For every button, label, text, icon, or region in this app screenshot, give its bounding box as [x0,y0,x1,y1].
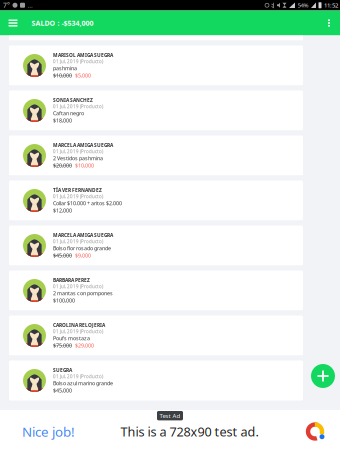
staticText: 01 Jul, 2019 (Producto) [53,238,103,244]
staticText: MARCELA AMIGA SUEGRA [53,142,113,148]
button[interactable]: Nice job! [0,410,340,453]
staticText: $45,000 [53,387,72,394]
button[interactable]: MARISOL AMIGA SUEGRA [9,45,303,85]
staticText: … [27,1,32,10]
staticText: CAROLINA RELOJERIA [53,322,105,328]
staticText: $10,000 [75,162,94,169]
staticText: $75.000 [53,342,72,349]
staticText: 01 Jul, 2019 (Producto) [53,148,103,154]
staticText: SALDO : -$534,000 [31,18,93,28]
staticText: 01 Jul, 2019 (Producto) [53,328,103,334]
staticText: Bolso azul marino grande [53,379,113,387]
staticText: 01 Jul, 2019 (Producto) [53,58,103,64]
staticText: pashmina [53,64,77,72]
staticText: 11:52 [324,1,338,9]
staticText: 01 Jul, 2019 (Producto) [53,193,103,199]
staticText: 01 Jul, 2019 (Producto) [53,283,103,289]
button[interactable]: TÍA VER FERNANDEZ [9,180,303,220]
staticText: Bolso flor rosado grande [53,244,111,252]
button[interactable]: CAROLINA RELOJERIA [9,315,303,355]
staticText: $5,000 [75,72,91,79]
button[interactable]: MARCELA AMIGA SUEGRA [9,225,303,265]
button[interactable]: More options [318,10,340,35]
button[interactable]: Add [311,364,335,388]
button[interactable]: BARBARA PEREZ [9,270,303,310]
staticText: Nice job! [22,422,75,441]
staticText: Poufs mostaza [53,334,90,342]
staticText: Collar $10.000 + aritos $2.000 [53,199,122,207]
button[interactable]: SUEGRA [9,360,303,400]
staticText: 2 Vestidos pashmina [53,154,103,162]
staticText: Test Ad [159,412,180,420]
button[interactable]: SONIA SANCHEZ [9,90,303,130]
button[interactable]: Menu [8,10,17,35]
staticText: 01 Jul, 2019 (Producto) [53,103,103,109]
staticText: MARCELA AMIGA SUEGRA [53,232,113,238]
staticText: 2 mantas con pompones [53,289,113,297]
staticText: $12,000 [53,207,72,214]
staticText: $45.000 [53,252,72,259]
staticText: SUEGRA [53,367,72,373]
staticText: This is a 728x90 test ad. [120,423,258,440]
staticText: $10,000 [53,72,72,79]
button[interactable]: MARCELA AMIGA SUEGRA [9,135,303,175]
staticText: $9,000 [75,252,91,259]
staticText: BARBARA PEREZ [53,277,90,283]
staticText: $18,000 [53,117,72,124]
staticText: 01 Jul, 2019 (Producto) [53,373,103,379]
staticText: $100,000 [53,297,75,304]
staticText: TÍA VER FERNANDEZ [53,187,102,193]
staticText: $20,000 [53,162,72,169]
staticText: $29,000 [75,342,94,349]
staticText: SONIA SANCHEZ [53,97,93,103]
staticText: 54% [297,1,308,9]
staticText: 7° [3,1,10,10]
staticText: MARISOL AMIGA SUEGRA [53,52,113,58]
staticText: Caftan negro [53,109,84,117]
